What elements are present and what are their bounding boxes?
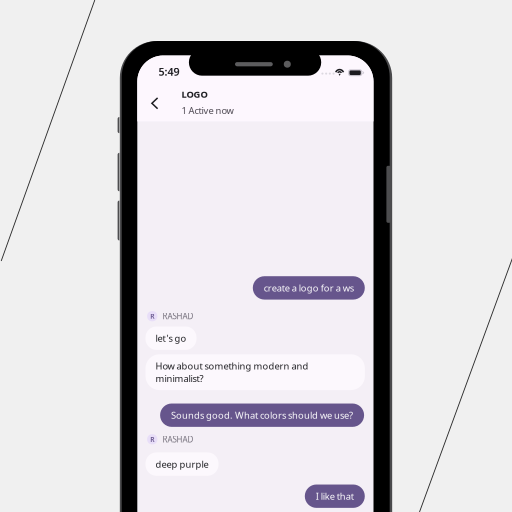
staticText: R <box>150 435 154 444</box>
staticText: R <box>150 312 154 321</box>
staticText: Sounds good. What colors should we use? <box>171 409 353 421</box>
staticText: let's go <box>155 332 186 344</box>
staticText: deep purple <box>155 458 208 470</box>
staticText: LOGO <box>182 88 208 100</box>
staticText: 1 Active now <box>182 104 234 117</box>
staticText: create a logo for a ws <box>264 282 354 294</box>
button[interactable]: Back <box>137 55 373 512</box>
staticText: RASHAD <box>162 434 193 445</box>
staticText: How about something modern and minimalis… <box>155 360 308 385</box>
staticText: I like that <box>316 490 354 502</box>
staticText: RASHAD <box>162 311 193 321</box>
staticText: 5:49 <box>159 64 180 79</box>
